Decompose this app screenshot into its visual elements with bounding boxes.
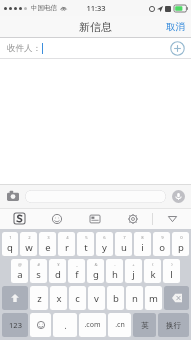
- staticText: u: [121, 241, 127, 254]
- staticText: 中国电信: [31, 4, 57, 12]
- button[interactable]: ¥: [49, 259, 66, 283]
- button[interactable]: 7: [115, 232, 132, 256]
- staticText: z: [37, 292, 42, 305]
- button[interactable]: ): [163, 259, 180, 283]
- button[interactable]: 换行: [158, 313, 189, 337]
- staticText: f: [75, 268, 79, 281]
- staticText: k: [150, 268, 156, 281]
- staticText: t: [84, 241, 88, 254]
- button[interactable]: (: [144, 259, 161, 283]
- staticText: .cn: [115, 320, 125, 330]
- button[interactable]: Sogou input: [0, 208, 38, 229]
- button[interactable]: _: [68, 259, 85, 283]
- button[interactable]: m: [145, 286, 162, 310]
- button[interactable]: +: [125, 259, 142, 283]
- staticText: 9: [161, 235, 164, 241]
- staticText: n: [132, 292, 138, 305]
- staticText: v: [94, 292, 99, 305]
- staticText: e: [45, 241, 51, 254]
- button[interactable]: 1: [2, 232, 18, 256]
- staticText: 收件人：: [7, 43, 41, 54]
- staticText: +: [132, 262, 135, 268]
- staticText: ¥: [57, 262, 60, 268]
- staticText: -: [114, 262, 116, 268]
- button[interactable]: Voice message: [170, 188, 186, 204]
- button[interactable]: .cn: [108, 313, 131, 337]
- staticText: h: [112, 268, 118, 281]
- button[interactable]: .: [53, 313, 77, 337]
- button[interactable]: c: [69, 286, 86, 310]
- button[interactable]: Add contact: [170, 41, 185, 56]
- button[interactable]: Shift: [2, 286, 28, 310]
- staticText: i: [141, 241, 144, 254]
- staticText: 11:33: [86, 3, 106, 13]
- staticText: o: [159, 241, 165, 254]
- button[interactable]: x: [50, 286, 67, 310]
- button[interactable]: 4: [58, 232, 75, 256]
- button[interactable]: 2: [20, 232, 37, 256]
- staticText: 新信息: [79, 20, 112, 34]
- staticText: 换行: [166, 321, 181, 330]
- button[interactable]: 5: [77, 232, 94, 256]
- button[interactable]: v: [88, 286, 105, 310]
- staticText: l: [170, 268, 173, 281]
- staticText: w: [25, 241, 33, 254]
- staticText: 2: [28, 235, 31, 241]
- button[interactable]: n: [126, 286, 143, 310]
- button[interactable]: Camera: [5, 188, 21, 204]
- staticText: d: [55, 268, 61, 281]
- button[interactable]: 取消: [160, 18, 191, 36]
- staticText: p: [178, 241, 184, 254]
- button[interactable]: #: [30, 259, 47, 283]
- button[interactable]: 8: [134, 232, 151, 256]
- staticText: 6: [103, 235, 106, 241]
- staticText: 取消: [166, 21, 185, 33]
- staticText: 8: [141, 235, 144, 241]
- staticText: m: [149, 292, 158, 305]
- button[interactable]: Emoji: [38, 208, 76, 229]
- button[interactable]: Emoji: [30, 313, 51, 337]
- staticText: 1: [9, 235, 12, 241]
- button[interactable]: -: [106, 259, 123, 283]
- button[interactable]: Delete: [164, 286, 189, 310]
- staticText: x: [56, 292, 62, 305]
- button[interactable]: 123: [2, 313, 28, 337]
- button[interactable]: [25, 190, 166, 203]
- button[interactable]: Hide keyboard: [153, 208, 191, 229]
- staticText: 123: [9, 320, 22, 330]
- button[interactable]: z: [30, 286, 48, 310]
- staticText: .: [64, 320, 67, 331]
- button[interactable]: @: [11, 259, 28, 283]
- staticText: c: [75, 292, 80, 305]
- staticText: r: [65, 241, 69, 254]
- staticText: _: [76, 262, 78, 268]
- button[interactable]: 9: [153, 232, 170, 256]
- button[interactable]: 6: [96, 232, 113, 256]
- button[interactable]: Keyboard layout: [76, 208, 114, 229]
- button[interactable]: b: [107, 286, 124, 310]
- staticText: &: [94, 262, 98, 268]
- staticText: @: [18, 262, 22, 268]
- staticText: 0: [180, 235, 183, 241]
- staticText: a: [17, 268, 23, 281]
- staticText: b: [113, 292, 119, 305]
- button[interactable]: 0: [172, 232, 189, 256]
- button[interactable]: .com: [79, 313, 106, 337]
- staticText: j: [132, 268, 135, 281]
- staticText: 3: [47, 235, 50, 241]
- staticText: s: [36, 268, 41, 281]
- staticText: ): [171, 262, 173, 268]
- staticText: q: [7, 241, 13, 254]
- staticText: 英: [141, 321, 149, 330]
- staticText: g: [93, 268, 99, 281]
- staticText: 4: [66, 235, 69, 241]
- staticText: y: [102, 241, 107, 254]
- button[interactable]: &: [87, 259, 104, 283]
- staticText: (: [152, 262, 154, 268]
- staticText: .com: [84, 320, 101, 330]
- button[interactable]: 3: [39, 232, 56, 256]
- staticText: #: [37, 262, 40, 268]
- staticText: 7: [123, 235, 126, 241]
- button[interactable]: Settings: [114, 208, 152, 229]
- button[interactable]: 英: [133, 313, 156, 337]
